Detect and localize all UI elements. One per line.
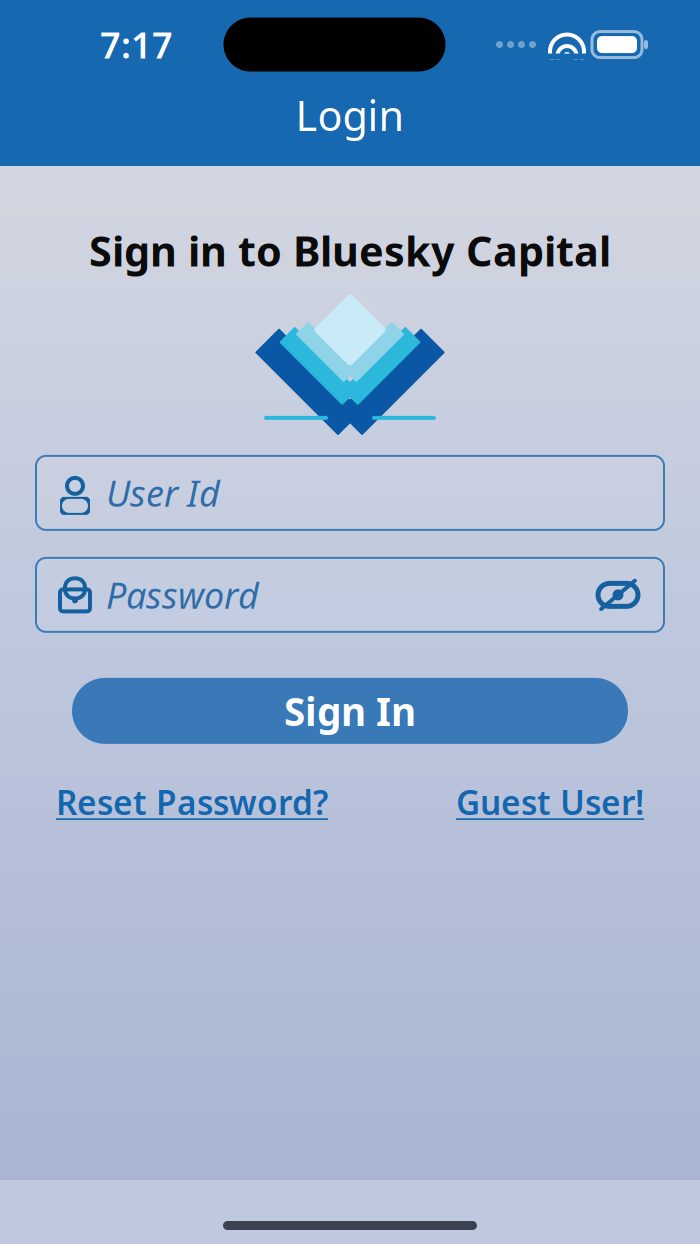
staticText: 7:17: [100, 21, 173, 68]
staticText: User Id: [106, 469, 220, 517]
staticText: Sign in to Bluesky Capital: [89, 223, 611, 278]
button[interactable]: Reset Password?: [56, 780, 328, 824]
staticText: Reset Password?: [56, 780, 328, 824]
button[interactable]: User Id: [36, 456, 664, 530]
staticText: Guest User!: [456, 780, 644, 824]
staticText: Password: [106, 571, 259, 619]
button[interactable]: Sign In: [72, 678, 628, 744]
staticText: Sign In: [284, 685, 416, 736]
staticText: Login: [295, 88, 404, 142]
button[interactable]: Guest User!: [456, 780, 644, 824]
button[interactable]: Password: [36, 558, 664, 632]
button[interactable]: Show password: [594, 578, 642, 612]
